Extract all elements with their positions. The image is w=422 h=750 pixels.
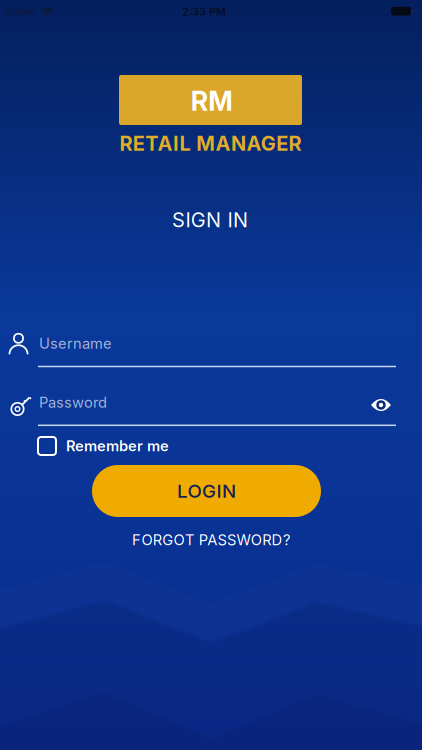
staticText: 2:33 PM (182, 5, 226, 18)
button[interactable]: Password (0, 378, 422, 434)
staticText: RM (191, 85, 233, 117)
staticText: Remember me (66, 437, 169, 455)
staticText: LOGIN (177, 480, 236, 502)
button[interactable]: FORGOT PASSWORD? (132, 531, 290, 549)
button[interactable]: Username (0, 320, 422, 376)
button[interactable]: Remember me (37, 434, 237, 458)
staticText: RETAIL MANAGER (119, 132, 302, 155)
staticText: Password (39, 394, 107, 411)
staticText: Username (39, 335, 112, 352)
staticText: Carrier (5, 6, 36, 17)
staticText: FORGOT PASSWORD? (132, 531, 290, 549)
button[interactable]: LOGIN (92, 465, 321, 517)
button[interactable]: Show password (370, 398, 391, 412)
staticText: SIGN IN (172, 208, 248, 232)
